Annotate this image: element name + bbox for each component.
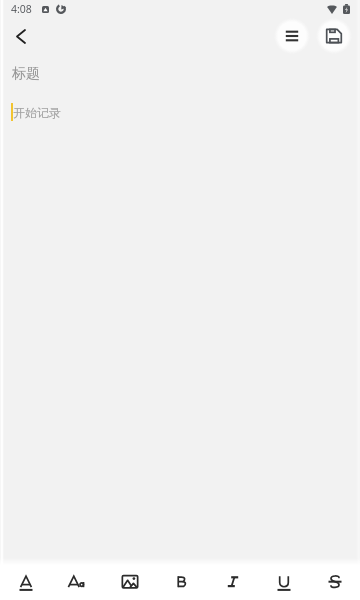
button[interactable]: Font size xyxy=(52,565,104,600)
button[interactable]: Back xyxy=(5,21,36,52)
button[interactable]: Bold xyxy=(156,565,207,600)
button[interactable]: Menu xyxy=(273,18,311,54)
button[interactable]: Underline xyxy=(258,565,309,600)
button[interactable]: Save xyxy=(315,18,353,54)
staticText: 4:08 xyxy=(11,2,32,16)
button[interactable]: Italic xyxy=(207,565,258,600)
button[interactable]: Text color xyxy=(0,565,52,600)
button[interactable]: Strikethrough xyxy=(309,565,360,600)
button[interactable]: Insert image xyxy=(104,565,156,600)
staticText: 开始记录 xyxy=(13,105,61,120)
staticText: 标题 xyxy=(12,65,40,83)
